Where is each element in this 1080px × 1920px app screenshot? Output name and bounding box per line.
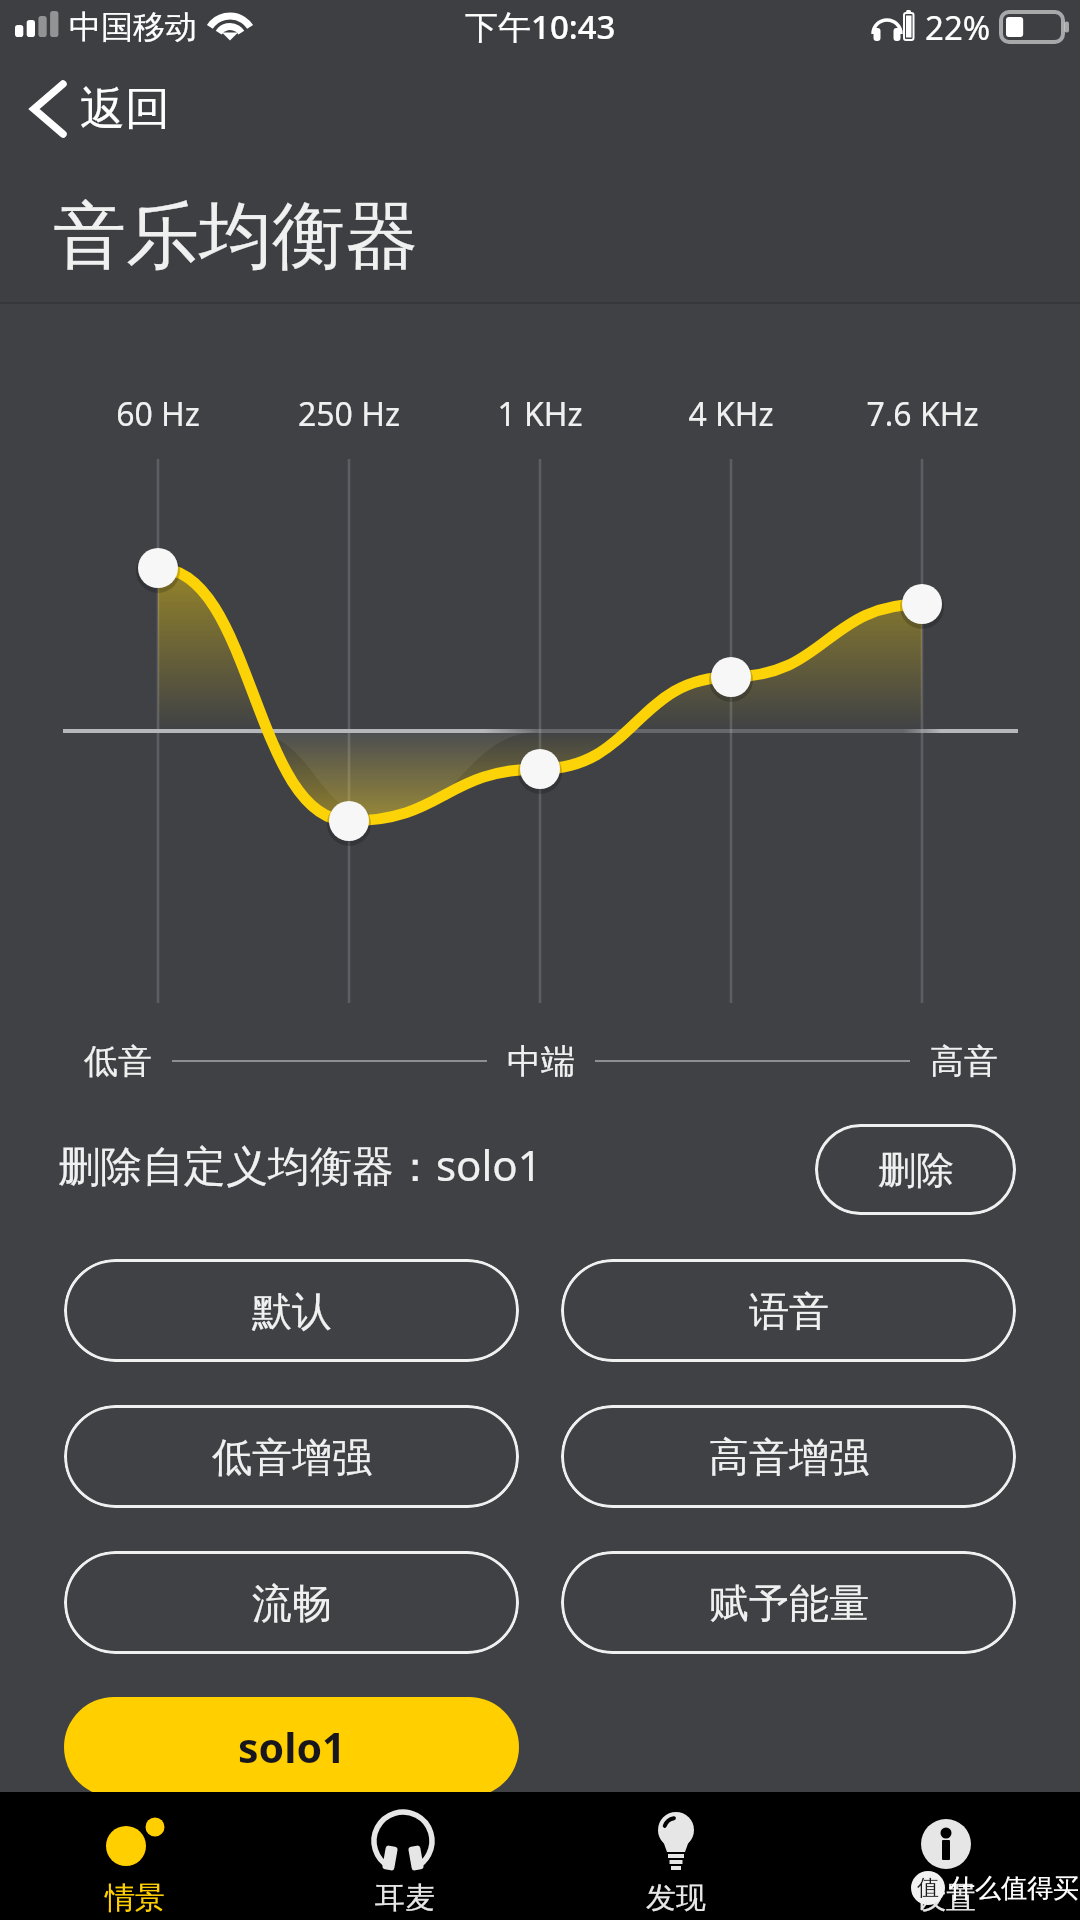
staticText: 默认 [252, 1286, 332, 1336]
button[interactable]: Scenes [0, 1792, 270, 1920]
button[interactable]: 高音增强 [561, 1405, 1016, 1508]
staticText: 情景 [105, 1879, 165, 1917]
button[interactable]: 低音增强 [64, 1405, 519, 1508]
staticText: 下午10:43 [465, 4, 616, 49]
button[interactable]: Settings [811, 1792, 1080, 1920]
button[interactable]: 默认 [64, 1259, 519, 1362]
staticText: 4 KHz [688, 392, 774, 436]
button[interactable]: Headset [270, 1792, 540, 1920]
staticText: 发现 [646, 1879, 706, 1917]
staticText: 什么值得买 [949, 1872, 1079, 1905]
staticText: 高音增强 [709, 1432, 869, 1482]
staticText: 1 KHz [497, 392, 583, 436]
staticText: 60 Hz [116, 392, 200, 436]
staticText: 流畅 [252, 1578, 332, 1628]
staticText: 22% [925, 5, 991, 50]
button[interactable]: 流畅 [64, 1551, 519, 1654]
staticText: 中端 [507, 1040, 575, 1083]
staticText: 赋予能量 [709, 1578, 869, 1628]
staticText: solo1 [238, 1719, 346, 1775]
staticText: 250 Hz [298, 392, 400, 436]
button[interactable]: 语音 [561, 1259, 1016, 1362]
staticText: 删除 [878, 1146, 954, 1194]
button[interactable]: 赋予能量 [561, 1551, 1016, 1654]
button[interactable]: 删除 [815, 1124, 1016, 1215]
staticText: 设置 [916, 1879, 976, 1917]
staticText: 删除自定义均衡器：solo1 [58, 1136, 542, 1193]
staticText: 低音 [84, 1040, 152, 1083]
staticText: 中国移动 [69, 7, 197, 47]
button[interactable]: Back [22, 72, 178, 146]
button[interactable]: Discover [541, 1792, 811, 1920]
staticText: 返回 [80, 81, 170, 138]
staticText: 耳麦 [375, 1879, 435, 1917]
staticText: 高音 [930, 1040, 998, 1083]
staticText: 值 [917, 1874, 939, 1902]
staticText: 语音 [749, 1286, 829, 1336]
staticText: 音乐均衡器 [53, 191, 418, 283]
staticText: 低音增强 [212, 1432, 372, 1482]
button[interactable]: solo1 [64, 1697, 519, 1797]
staticText: 7.6 KHz [866, 392, 979, 436]
